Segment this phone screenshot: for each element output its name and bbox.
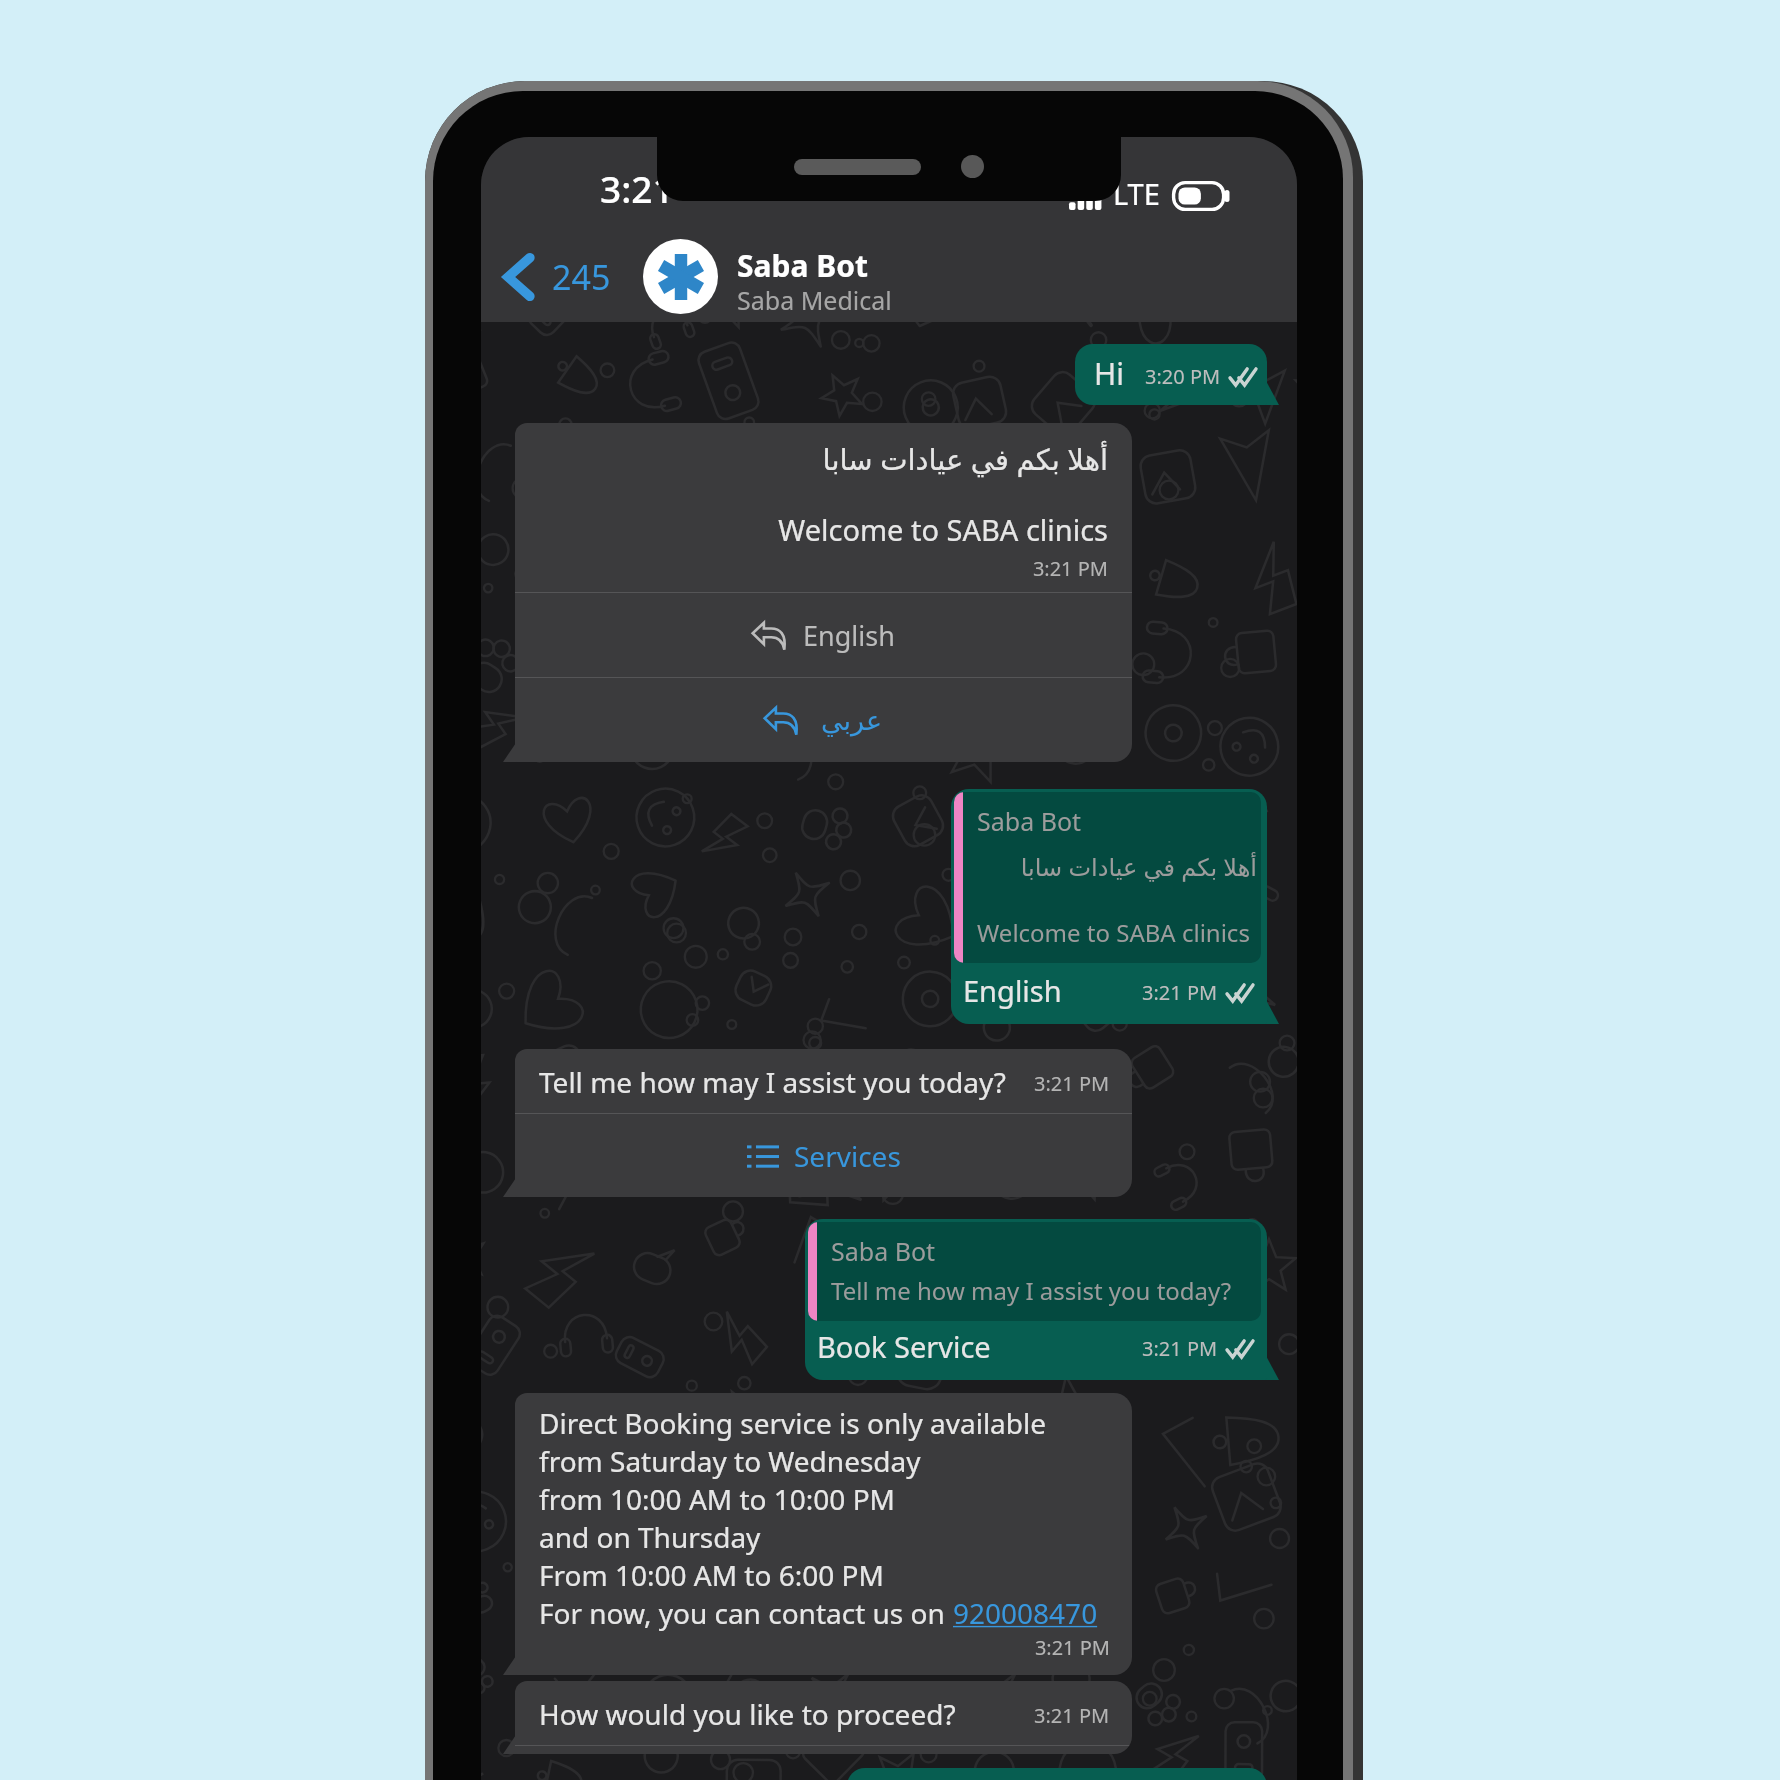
staticText: 3:21 PM <box>1034 1070 1110 1097</box>
staticText: Saba Medical <box>737 283 892 317</box>
staticText: 3:21 PM <box>1142 979 1218 1006</box>
staticText: Tell me how may I assist you today? <box>539 1063 1006 1101</box>
button[interactable]: Back to 245 chats <box>481 246 615 308</box>
button[interactable]: Tell me how may I assist you today? <box>515 1049 1132 1197</box>
staticText: 3:20 PM <box>1145 363 1221 390</box>
staticText: 920008470 <box>953 1594 1098 1632</box>
staticText: 3:21 <box>600 163 674 213</box>
staticText: Tell me how may I assist you today? <box>831 1274 1257 1307</box>
staticText: Services <box>794 1137 901 1175</box>
staticText: Welcome to SABA clinics <box>977 916 1257 949</box>
staticText: LTE <box>1113 174 1160 213</box>
staticText: 3:21 PM <box>1034 1702 1110 1729</box>
button[interactable]: Saba Bot <box>805 1219 1267 1380</box>
staticText: For now, you can contact us on <box>539 1594 953 1632</box>
staticText: English <box>963 971 1062 1010</box>
staticText: 3:21 PM <box>539 1634 1110 1661</box>
staticText: and on Thursday <box>539 1518 761 1556</box>
staticText: Direct Booking service is only available <box>539 1404 1047 1442</box>
button[interactable]: English <box>515 593 1132 677</box>
button[interactable]: أهلا بكم في عيادات سابا <box>515 423 1132 762</box>
staticText: Welcome to SABA clinics <box>539 510 1108 549</box>
button[interactable]: How would you like to proceed? <box>515 1681 1132 1754</box>
staticText: How would you like to proceed? <box>539 1695 956 1733</box>
staticText: 245 <box>552 254 611 300</box>
staticText: Hi <box>1094 353 1124 394</box>
staticText: أهلا بكم في عيادات سابا <box>977 850 1257 883</box>
staticText: 3:21 PM <box>539 555 1108 582</box>
staticText: عربي <box>821 705 883 736</box>
staticText: from Saturday to Wednesday <box>539 1442 921 1480</box>
button[interactable]: Services <box>515 1114 1132 1197</box>
button[interactable]: Saba Bot <box>951 789 1267 1024</box>
staticText: From 10:00 AM to 6:00 PM <box>539 1556 884 1594</box>
staticText: from 10:00 AM to 10:00 PM <box>539 1480 895 1518</box>
staticText: Saba Bot <box>977 804 1082 838</box>
button[interactable]: عربي <box>515 678 1132 762</box>
staticText: English <box>803 617 895 654</box>
staticText: Saba Bot <box>737 245 868 283</box>
button[interactable]: Saba Bot <box>643 231 1297 322</box>
button[interactable]: Direct Booking service is only available <box>515 1393 1132 1675</box>
button[interactable]: Hi <box>1075 344 1267 405</box>
staticText: أهلا بكم في عيادات سابا <box>539 439 1108 478</box>
staticText: Book Service <box>817 1327 991 1366</box>
staticText: Saba Bot <box>831 1234 936 1268</box>
staticText: 3:21 PM <box>1142 1335 1218 1362</box>
